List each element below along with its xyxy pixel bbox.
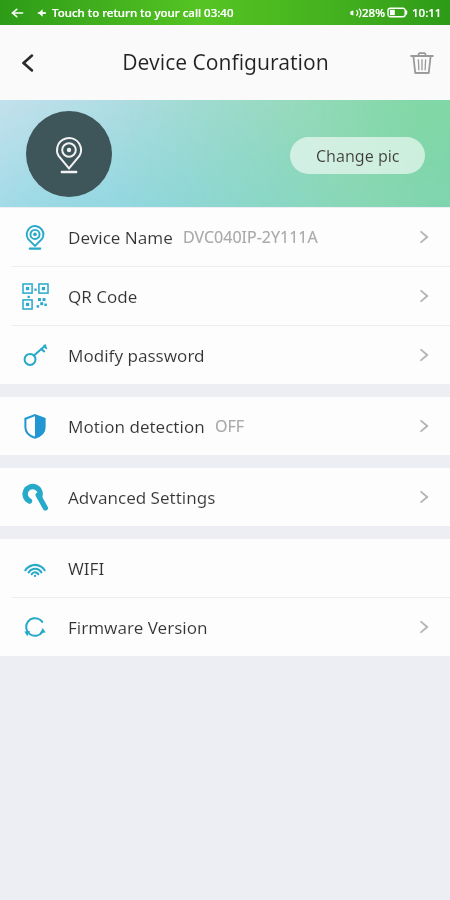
staticText: 10:11	[412, 5, 442, 21]
button[interactable]: Device picture	[26, 111, 112, 197]
button[interactable]: Firmware Version	[0, 598, 450, 656]
button[interactable]: Back	[0, 35, 56, 91]
staticText: Modify password	[68, 344, 205, 367]
staticText: WIFI	[68, 557, 105, 580]
staticText: Firmware Version	[68, 616, 208, 639]
staticText: Advanced Settings	[68, 486, 216, 509]
button[interactable]: Modify password	[0, 326, 450, 384]
staticText: 28%	[362, 5, 385, 21]
button[interactable]: Device Name	[0, 208, 450, 266]
button[interactable]: Advanced Settings	[0, 468, 450, 526]
staticText: Motion detection	[68, 415, 205, 438]
button[interactable]: WIFI	[0, 539, 450, 597]
staticText: QR Code	[68, 285, 138, 308]
button[interactable]: Change pic	[290, 137, 425, 174]
staticText: DVC040IP-2Y111A	[183, 226, 318, 248]
staticText: Touch to return to your call 03:40	[52, 5, 234, 21]
staticText: Device Configuration	[122, 48, 329, 77]
staticText: Device Name	[68, 226, 173, 249]
button[interactable]: Delete device	[394, 35, 450, 91]
staticText: Change pic	[316, 145, 400, 167]
staticText: OFF	[215, 415, 245, 437]
button[interactable]: QR Code	[0, 267, 450, 325]
button[interactable]: Motion detection	[0, 397, 450, 455]
